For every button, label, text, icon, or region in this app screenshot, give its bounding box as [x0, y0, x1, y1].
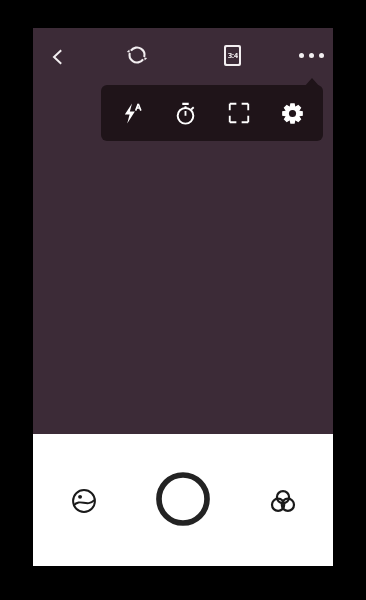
button[interactable]: Color filters — [262, 480, 304, 522]
button[interactable]: Settings — [269, 90, 315, 136]
button[interactable]: Timer — [162, 90, 208, 136]
button[interactable]: Effects — [63, 480, 105, 522]
button[interactable]: Framing grid — [216, 90, 262, 136]
button[interactable]: Aspect ratio 3:4 — [219, 40, 245, 70]
button[interactable]: Shutter — [155, 471, 211, 527]
button[interactable]: Switch camera — [120, 38, 154, 72]
staticText: 3:4 — [228, 51, 238, 61]
button[interactable]: Back — [41, 40, 75, 74]
button[interactable]: More options — [294, 38, 328, 72]
button[interactable]: Flash auto — [109, 90, 155, 136]
